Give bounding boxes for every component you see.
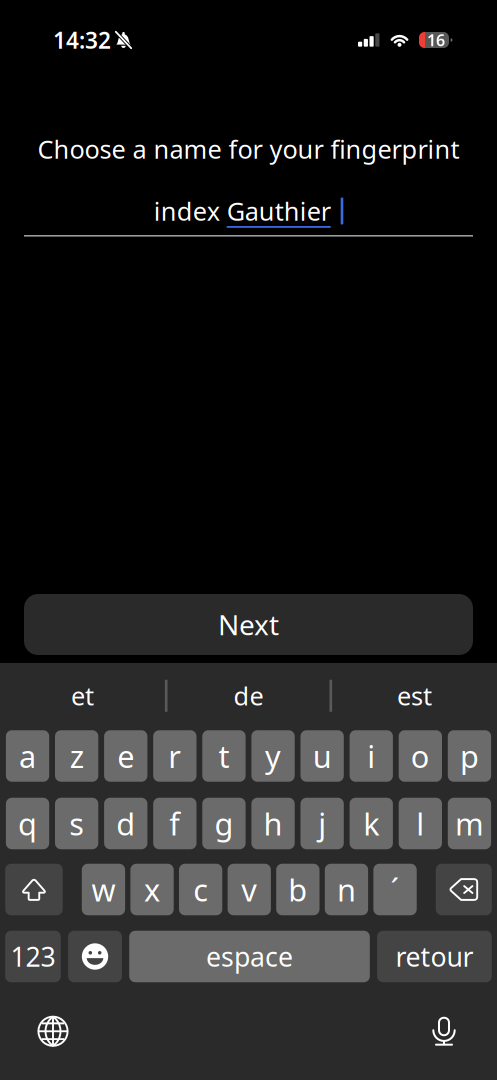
button[interactable]: g <box>202 798 246 849</box>
button[interactable]: s <box>55 798 98 849</box>
button[interactable]: d <box>104 798 147 849</box>
button[interactable]: c <box>179 864 222 915</box>
staticText: d <box>116 803 135 844</box>
button[interactable]: x <box>130 864 174 915</box>
button[interactable]: h <box>251 798 295 849</box>
staticText: espace <box>206 939 293 974</box>
button[interactable]: a <box>6 730 49 782</box>
button[interactable]: t <box>202 730 246 782</box>
staticText: m <box>455 803 484 844</box>
staticText: q <box>18 803 37 844</box>
staticText: r <box>168 736 181 776</box>
button[interactable]: w <box>82 864 125 915</box>
staticText: c <box>193 869 208 910</box>
staticText: index <box>154 194 227 228</box>
staticText: v <box>241 869 257 910</box>
staticText: Choose a name for your fingerprint <box>37 132 459 166</box>
staticText: de <box>233 679 263 712</box>
staticText: retour <box>395 939 473 974</box>
button[interactable]: ´ <box>373 864 417 915</box>
staticText: o <box>411 736 430 776</box>
staticText: e <box>117 736 134 776</box>
button[interactable]: o <box>399 730 442 782</box>
staticText: i <box>367 736 375 776</box>
button[interactable]: y <box>251 730 295 782</box>
button[interactable]: m <box>448 798 491 849</box>
button[interactable]: n <box>325 864 368 915</box>
staticText: Gauthier <box>227 194 331 228</box>
button[interactable]: Dictation <box>399 982 489 1080</box>
button[interactable]: de <box>167 663 329 729</box>
button[interactable]: espace <box>129 931 370 982</box>
staticText: l <box>416 803 424 844</box>
staticText: ´ <box>390 869 399 910</box>
staticText: y <box>265 736 281 776</box>
button[interactable]: k <box>350 798 393 849</box>
staticText: n <box>337 869 356 910</box>
staticText: k <box>363 803 379 844</box>
button[interactable]: retour <box>377 931 492 982</box>
button[interactable]: Next keyboard <box>8 982 98 1080</box>
button[interactable]: b <box>276 864 319 915</box>
staticText: et <box>71 679 94 712</box>
staticText: Next <box>218 606 279 643</box>
staticText: b <box>288 869 307 910</box>
staticText: w <box>91 869 115 910</box>
button[interactable]: et <box>0 663 165 729</box>
button[interactable]: est <box>332 663 497 729</box>
staticText: 14:32 <box>53 25 111 55</box>
staticText: h <box>263 803 282 844</box>
button[interactable]: f <box>153 798 196 849</box>
button[interactable]: Emoji <box>68 931 122 982</box>
button[interactable]: q <box>6 798 49 849</box>
button[interactable]: e <box>104 730 147 782</box>
staticText: a <box>19 736 36 776</box>
staticText: g <box>214 803 233 844</box>
staticText: x <box>144 869 160 910</box>
button[interactable]: u <box>300 730 344 782</box>
staticText: 123 <box>10 939 55 974</box>
button[interactable]: p <box>448 730 491 782</box>
staticText: z <box>70 736 84 776</box>
staticText: f <box>169 803 180 844</box>
staticText: t <box>218 736 229 776</box>
staticText: u <box>313 736 332 776</box>
button[interactable]: j <box>300 798 344 849</box>
button[interactable]: z <box>55 730 98 782</box>
button[interactable]: Shift <box>5 864 63 915</box>
button[interactable]: r <box>153 730 196 782</box>
staticText: 16 <box>427 29 445 51</box>
button[interactable]: l <box>399 798 442 849</box>
button[interactable]: v <box>228 864 271 915</box>
button[interactable]: Next <box>24 594 473 655</box>
staticText: p <box>460 736 479 776</box>
staticText: est <box>397 679 432 712</box>
staticText: j <box>318 803 326 844</box>
button[interactable]: 123 <box>5 931 61 982</box>
staticText: s <box>69 803 84 844</box>
button[interactable]: i <box>350 730 393 782</box>
button[interactable]: Delete <box>436 864 492 915</box>
